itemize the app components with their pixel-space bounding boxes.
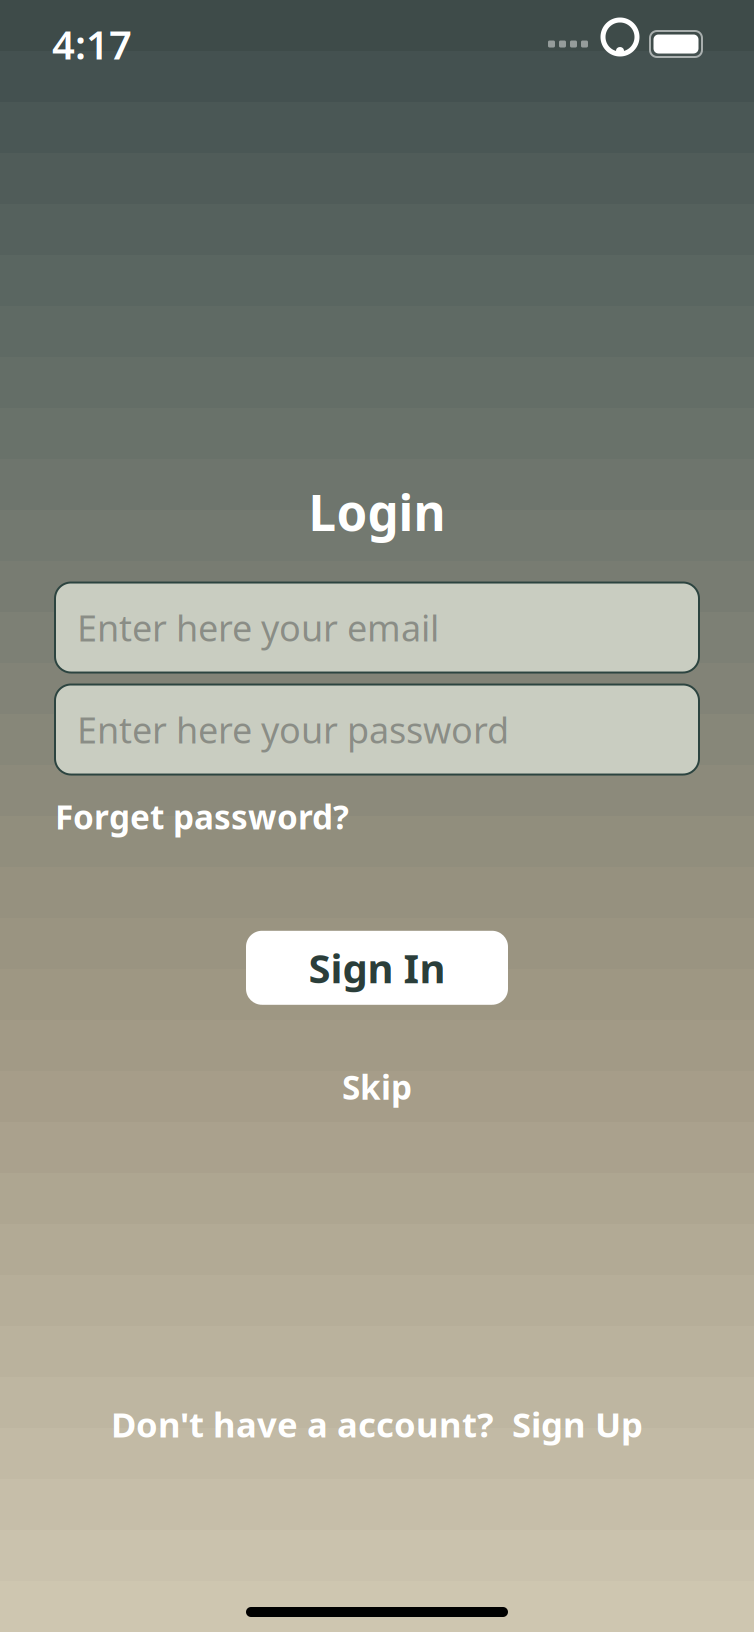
- staticText: Sign In: [308, 941, 445, 994]
- staticText: Skip: [342, 1065, 412, 1109]
- staticText: Forget password?: [55, 794, 349, 839]
- staticText: Enter here your email: [77, 604, 439, 651]
- button[interactable]: Enter here your email: [0, 582, 754, 672]
- button[interactable]: Sign Up: [512, 1401, 643, 1447]
- button[interactable]: Skip: [316, 1057, 438, 1117]
- staticText: 4:17: [52, 17, 132, 70]
- staticText: Login: [308, 479, 445, 544]
- staticText: Don't have a account?: [111, 1401, 494, 1447]
- staticText: Sign Up: [512, 1401, 643, 1447]
- staticText: Enter here your password: [77, 706, 509, 753]
- button[interactable]: Sign In: [246, 931, 508, 1005]
- button[interactable]: Enter here your password: [0, 684, 754, 774]
- button[interactable]: Forget password?: [55, 788, 349, 845]
